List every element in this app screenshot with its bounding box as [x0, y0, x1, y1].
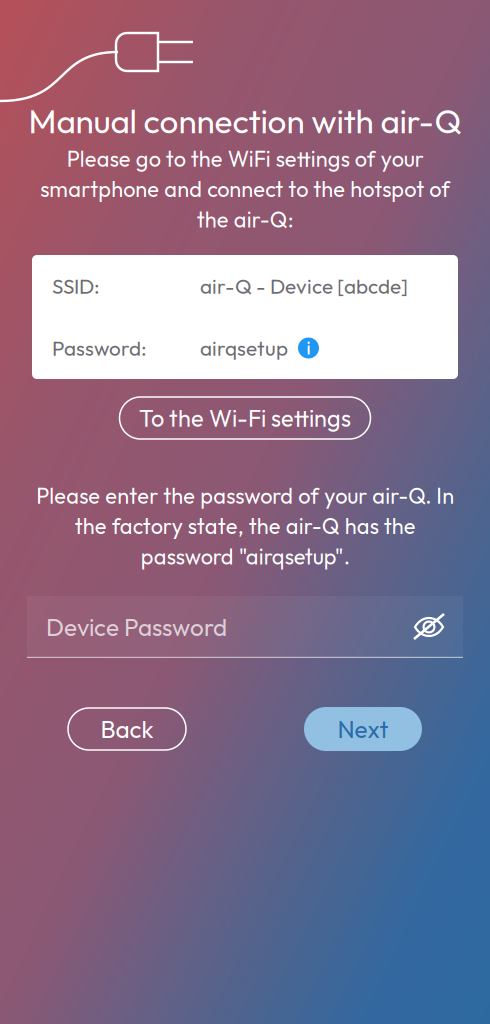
button[interactable]: To the Wi-Fi settings [119, 397, 370, 439]
staticText: Please enter the password of your air-Q.… [36, 482, 454, 570]
staticText: Next [337, 714, 388, 744]
staticText: Password: [52, 335, 147, 361]
staticText: Please go to the WiFi settings of your s… [40, 145, 450, 233]
button[interactable]: More information [298, 337, 319, 358]
staticText: air-Q - Device [abcde] [200, 273, 408, 299]
staticText: To the Wi-Fi settings [139, 403, 351, 433]
staticText: Back [100, 714, 153, 744]
staticText: Device Password [46, 612, 227, 642]
staticText: SSID: [52, 273, 100, 299]
button[interactable]: Show password [409, 607, 449, 647]
staticText: airqsetup [200, 335, 288, 361]
button[interactable]: Back [68, 708, 186, 750]
button[interactable]: Next [304, 707, 422, 751]
staticText: i [306, 337, 310, 359]
staticText: Manual connection with air-Q [28, 100, 461, 142]
